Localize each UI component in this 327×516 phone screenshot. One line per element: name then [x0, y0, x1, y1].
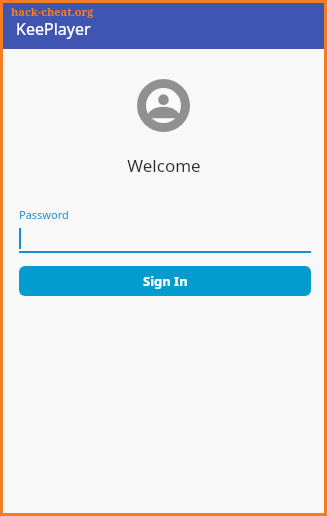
staticText: hack-cheat.org: [11, 4, 94, 19]
staticText: KeePlayer: [16, 18, 91, 40]
button[interactable]: Password: [19, 207, 311, 253]
button[interactable]: Sign In: [19, 266, 311, 296]
staticText: Password: [19, 207, 69, 222]
staticText: Sign In: [143, 272, 188, 290]
other: Account avatar: [137, 79, 190, 132]
staticText: Welcome: [127, 154, 201, 177]
